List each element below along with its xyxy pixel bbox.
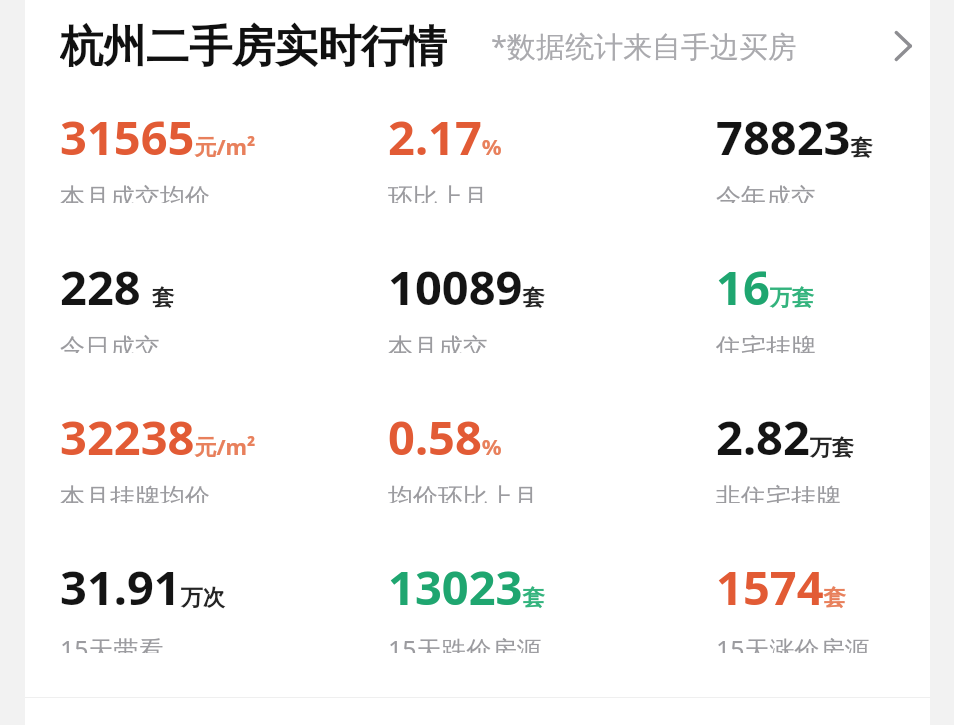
button[interactable]: 13023套 [388,555,716,653]
button[interactable]: 78823套 [716,105,930,203]
staticText: 31.91万次 [60,555,225,619]
button[interactable]: 228 套 [60,255,388,353]
staticText: 本月挂牌均价 [60,482,210,503]
button[interactable]: 2.82万套 [716,405,930,503]
button[interactable]: 0.58% [388,405,716,503]
staticText: 非住宅挂牌 [716,482,841,503]
staticText: 32238元/m² [60,405,256,469]
button[interactable]: 2.17% [388,105,716,203]
staticText: 0.58% [388,405,502,469]
staticText: 今年成交 [716,182,816,203]
staticText: 13023套 [388,555,545,619]
staticText: 2.82万套 [716,405,854,469]
staticText: *数据统计来自手边买房 [491,26,797,66]
button[interactable]: 32238元/m² [60,405,388,503]
button[interactable]: 16万套 [716,255,930,353]
staticText: 78823套 [716,105,873,169]
staticText: 10089套 [388,255,545,319]
staticText: 15天涨价房源 [716,632,870,653]
staticText: 本月成交均价 [60,182,210,203]
staticText: 16万套 [716,255,814,319]
staticText: 均价环比上月 [388,482,538,503]
staticText: 2.17% [388,105,502,169]
staticText: 1574套 [716,555,846,619]
staticText: 杭州二手房实时行情 [60,20,447,72]
staticText: 本月成交 [388,332,488,353]
staticText: 31565元/m² [60,105,256,169]
button[interactable]: 杭州二手房实时行情 [60,20,930,72]
button[interactable]: 10089套 [388,255,716,353]
button[interactable]: 1574套 [716,555,930,653]
staticText: 住宅挂牌 [716,332,816,353]
staticText: 228 套 [60,255,175,319]
staticText: 今日成交 [60,332,160,353]
button[interactable]: 31.91万次 [60,555,388,653]
staticText: 15天带看 [60,632,164,653]
staticText: 环比上月 [388,182,488,203]
other: 查看更多行情 [874,20,930,72]
staticText: 15天跌价房源 [388,632,542,653]
button[interactable]: 31565元/m² [60,105,388,203]
